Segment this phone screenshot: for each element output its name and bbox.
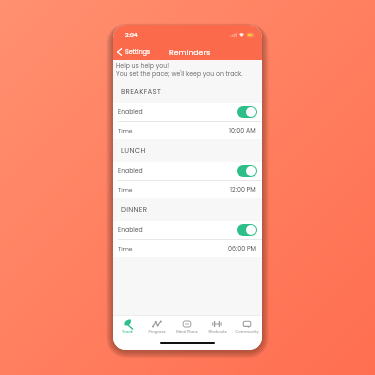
other: Back [117,48,122,56]
staticText: Community [235,329,259,335]
staticText: LUNCH [121,146,146,156]
staticText: 12:00 PM [230,185,256,194]
staticText: Time [118,186,133,194]
staticText: Help us help you! You set the pace; we'l… [116,62,243,78]
button[interactable]: Enabled [237,106,257,118]
staticText: DINNER [121,205,148,215]
staticText: 06:00 PM [228,244,256,253]
staticText: Progress [148,329,166,335]
button[interactable]: Time [113,181,262,198]
staticText: Enabled [118,108,143,117]
staticText: BREAKFAST [121,87,162,97]
staticText: Enabled [118,226,143,235]
button[interactable]: Enabled [113,103,262,121]
button[interactable]: Enabled [237,165,257,177]
staticText: 2:04 [125,31,138,39]
staticText: Time [118,127,133,135]
staticText: 10:00 AM [229,126,256,135]
button[interactable]: Track [113,319,142,335]
button[interactable]: Enabled [113,162,262,180]
staticText: Track [122,329,133,335]
button[interactable]: Enabled [237,224,257,236]
button[interactable]: Progress [142,319,172,335]
staticText: Meal Plans [176,329,198,335]
staticText: Enabled [118,167,143,176]
button[interactable]: Workouts [202,319,232,335]
button[interactable]: Enabled [113,221,262,239]
button[interactable]: Community [232,319,262,335]
button[interactable]: Back [113,45,157,58]
button[interactable]: Time [113,122,262,139]
staticText: Time [118,245,133,253]
button[interactable]: Meal Plans [172,319,202,335]
staticText: Reminders [169,47,211,58]
staticText: Workouts [208,329,227,335]
button[interactable]: Time [113,240,262,257]
staticText: Settings [125,47,151,56]
